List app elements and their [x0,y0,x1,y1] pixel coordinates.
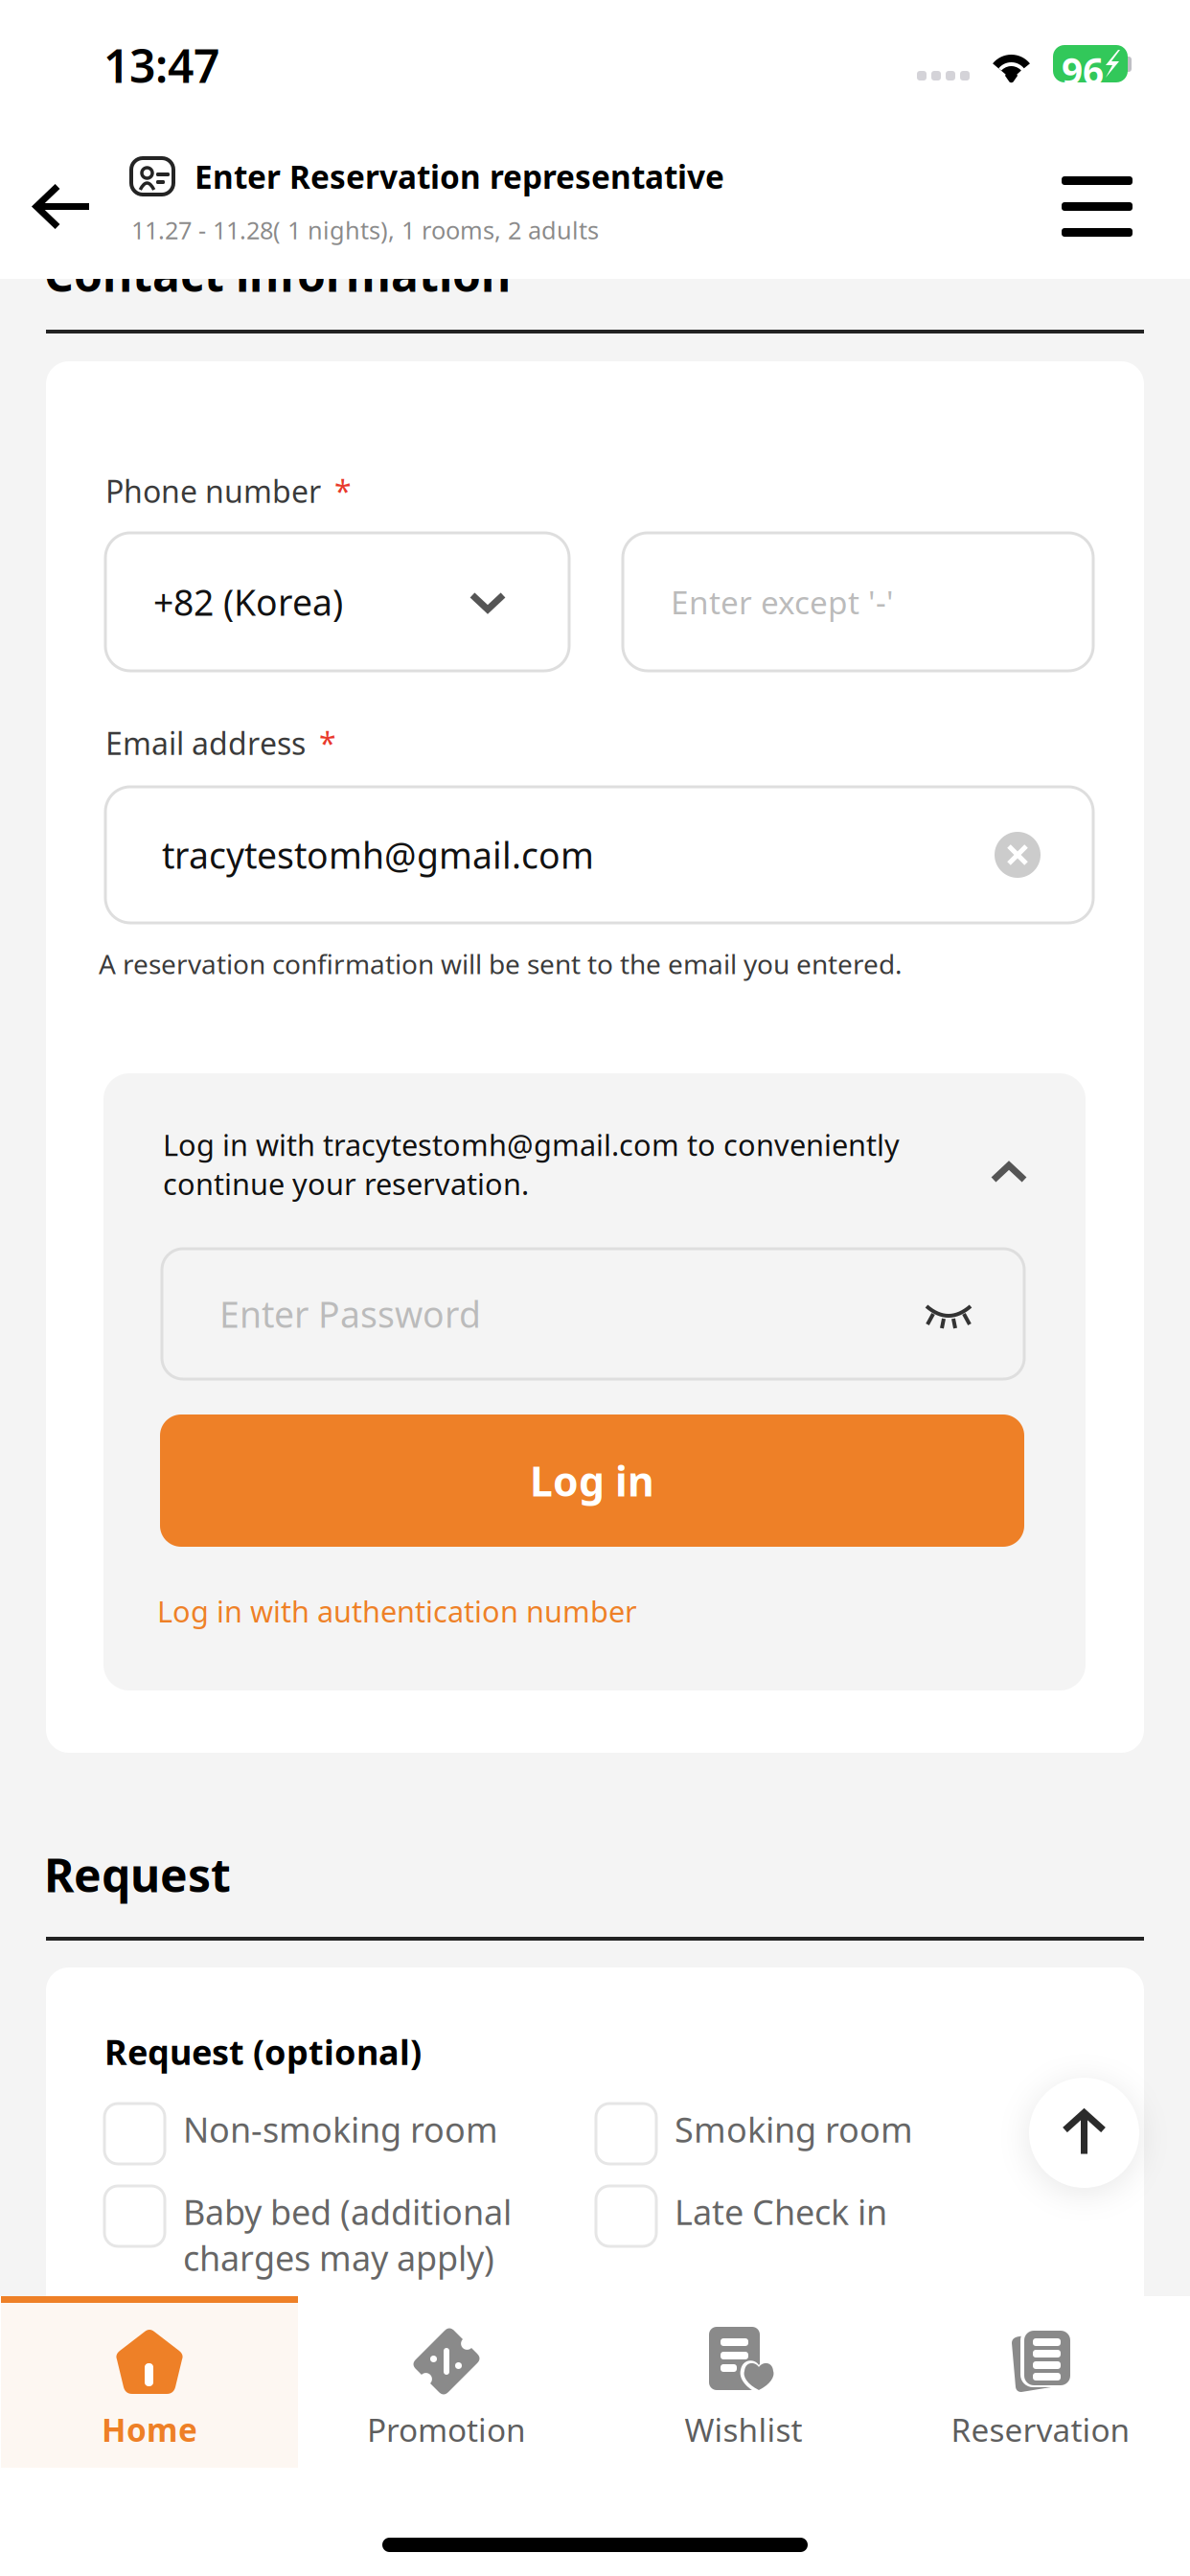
button[interactable]: Reservation [892,2296,1189,2468]
button[interactable]: Wishlist [595,2296,892,2468]
button[interactable]: Promotion [298,2296,595,2468]
button[interactable]: Scroll to top [1029,2078,1139,2188]
staticText: tracytestomh@gmail.com [162,831,594,879]
button[interactable]: Log in [160,1414,1024,1547]
staticText: 96 [1062,46,1104,95]
staticText: Enter Password [219,1290,481,1338]
button[interactable]: Collapse [969,1131,1055,1217]
staticText: Enter except '-' [671,581,894,623]
staticText: Request [44,1844,231,1905]
staticText: +82 (Korea) [153,578,343,626]
button[interactable]: Back [0,134,125,279]
button[interactable]: Log in with authentication number [157,1589,655,1633]
button[interactable]: Menu [1030,134,1164,279]
staticText: Promotion [367,2408,526,2451]
staticText: A reservation confirmation will be sent … [99,946,903,982]
staticText: Request (optional) [104,2029,422,2075]
staticText: 13:47 [103,34,219,96]
staticText: Reservation [951,2408,1130,2451]
button[interactable]: Smoking room [596,2104,1077,2164]
staticText: Contact information [44,243,511,304]
button[interactable]: Enter except '-' [623,533,1093,671]
button[interactable]: +82 (Korea) [105,533,569,671]
staticText: Home [102,2408,197,2451]
staticText: Smoking room [675,2106,913,2152]
staticText: Email address [105,723,306,763]
staticText: * [334,471,352,511]
staticText: Log in with authentication number [157,1591,637,1630]
button[interactable]: Late Check in [596,2186,1077,2246]
staticText: Log in with tracytestomh@gmail.com to co… [163,1125,900,1203]
button[interactable]: Non-smoking room [104,2104,585,2164]
button[interactable]: Home [1,2296,298,2468]
staticText: Log in [530,1454,654,1508]
staticText: Phone number [105,471,321,511]
staticText: Wishlist [685,2408,802,2451]
button[interactable]: tracytestomh@gmail.com [105,787,1093,923]
staticText: Late Check in [675,2189,887,2235]
button[interactable]: Enter Password [162,1249,1024,1379]
staticText: Non-smoking room [183,2106,498,2152]
staticText: 11.27 - 11.28( 1 nights), 1 rooms, 2 adu… [131,214,599,246]
staticText: * [319,723,336,763]
staticText: Enter Reservation representative [195,155,724,198]
button[interactable]: Baby bed (additional charges may apply) [104,2186,566,2278]
staticText: Baby bed (additional charges may apply) [183,2189,512,2280]
